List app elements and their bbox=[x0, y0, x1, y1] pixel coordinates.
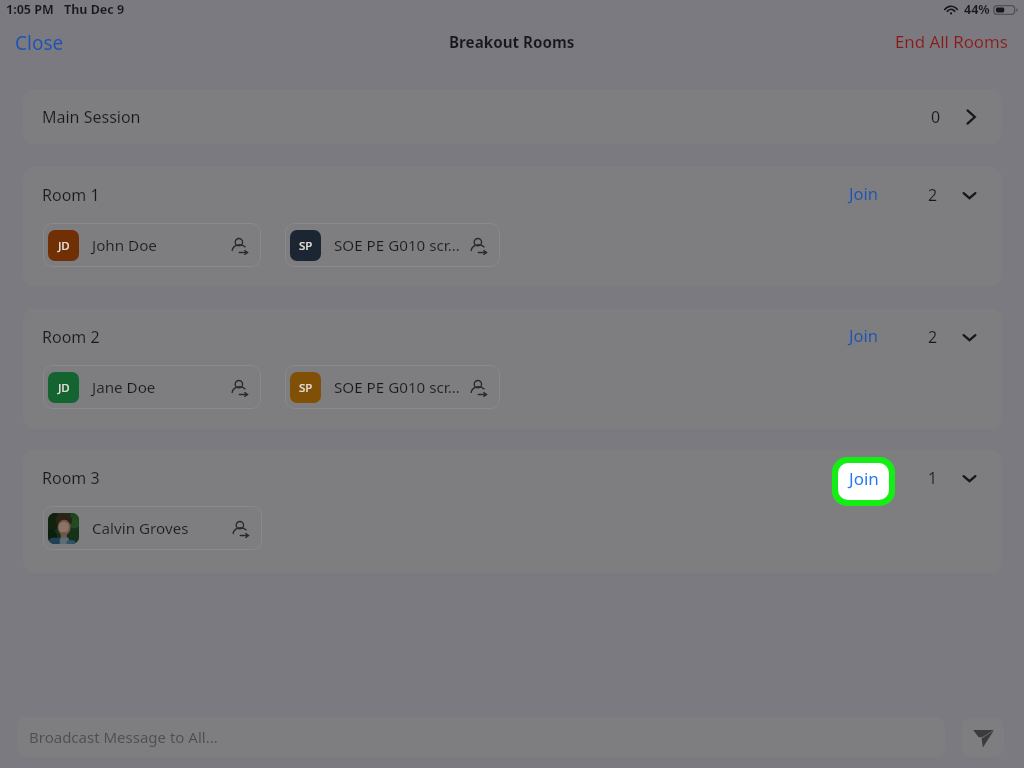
button[interactable]: Move participant bbox=[232, 380, 248, 396]
staticText: 1 bbox=[928, 467, 938, 489]
other: Open bbox=[966, 109, 976, 125]
button[interactable]: JD bbox=[43, 365, 261, 409]
other: Expand bbox=[959, 471, 980, 486]
staticText: Join bbox=[849, 467, 879, 490]
button[interactable]: Send broadcast message bbox=[962, 718, 1004, 757]
staticText: End All Rooms bbox=[895, 30, 1008, 53]
button[interactable]: JD bbox=[43, 223, 261, 267]
button[interactable]: Move participant bbox=[471, 380, 487, 396]
staticText: JD bbox=[58, 380, 70, 396]
staticText: Breakout Rooms bbox=[449, 32, 575, 53]
button[interactable]: Join bbox=[843, 177, 884, 209]
staticText: Join bbox=[849, 324, 878, 346]
button[interactable]: SP bbox=[285, 223, 500, 267]
staticText: JD bbox=[58, 238, 70, 254]
staticText: 44% bbox=[964, 1, 990, 18]
staticText: SP bbox=[299, 380, 313, 396]
staticText: SOE PE G010 scr… bbox=[334, 235, 460, 256]
button[interactable]: Move participant bbox=[471, 238, 487, 254]
other: Expand bbox=[959, 330, 980, 345]
staticText: Main Session bbox=[42, 106, 141, 128]
staticText: 0 bbox=[931, 106, 941, 128]
staticText: Room 1 bbox=[42, 184, 100, 206]
staticText: Jane Doe bbox=[92, 377, 156, 398]
staticText: Calvin Groves bbox=[92, 518, 189, 539]
button[interactable]: Broadcast Message to All... bbox=[17, 717, 945, 757]
staticText: 1:05 PM bbox=[6, 1, 54, 18]
staticText: John Doe bbox=[92, 235, 157, 256]
staticText: Thu Dec 9 bbox=[64, 1, 125, 18]
button[interactable]: End All Rooms bbox=[885, 24, 1018, 59]
staticText: Room 3 bbox=[42, 467, 100, 489]
button[interactable]: Move participant bbox=[233, 521, 249, 537]
staticText: Room 2 bbox=[42, 326, 100, 348]
staticText: Join bbox=[849, 182, 878, 204]
button[interactable]: Join bbox=[838, 463, 889, 500]
staticText: 2 bbox=[928, 326, 938, 348]
staticText: SOE PE G010 scr… bbox=[334, 377, 460, 398]
staticText: Close bbox=[15, 30, 64, 56]
button[interactable]: Move participant bbox=[232, 238, 248, 254]
button[interactable]: Join bbox=[843, 319, 884, 351]
button[interactable]: Close bbox=[5, 24, 74, 62]
staticText: 2 bbox=[928, 184, 938, 206]
button[interactable]: Main Session bbox=[23, 89, 1002, 144]
other: Expand bbox=[959, 188, 980, 203]
staticText: SP bbox=[299, 238, 313, 254]
staticText: Broadcast Message to All... bbox=[29, 727, 218, 747]
button[interactable]: Calvin Groves bbox=[43, 506, 262, 550]
button[interactable]: SP bbox=[285, 365, 500, 409]
